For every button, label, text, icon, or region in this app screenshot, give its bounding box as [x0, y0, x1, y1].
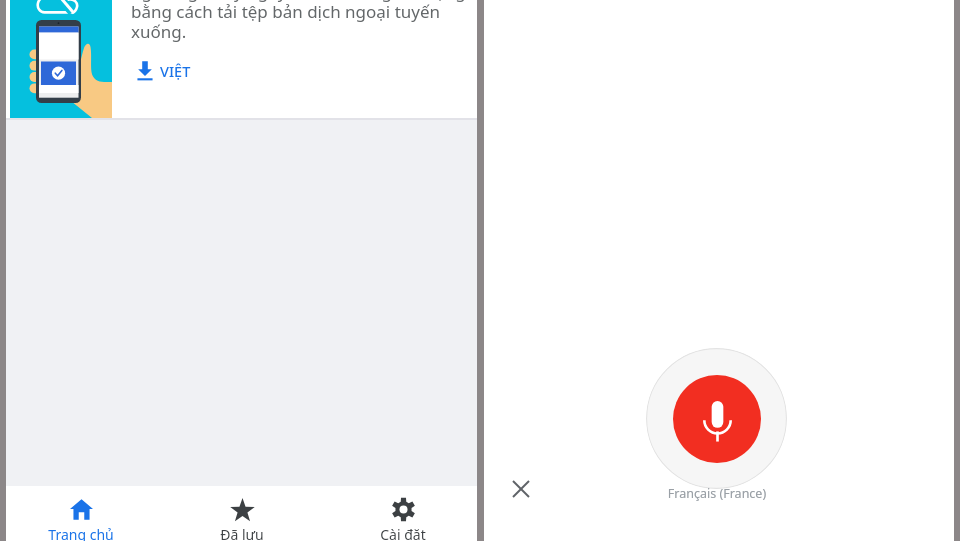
button[interactable]: Start voice input: [646, 348, 787, 489]
button[interactable]: Close: [509, 477, 533, 501]
staticText: Đã lưu: [220, 525, 264, 541]
button[interactable]: ngôn ngữ này ngay cả khi không có mạng b…: [6, 0, 477, 118]
button[interactable]: VIỆT: [136, 57, 191, 84]
staticText: Cài đặt: [380, 525, 426, 541]
staticText: ngôn ngữ này ngay cả khi không có mạng b…: [131, 0, 466, 42]
staticText: Français (France): [617, 485, 817, 502]
staticText: VIỆT: [160, 61, 191, 81]
button[interactable]: Cài đặt: [343, 486, 463, 541]
button[interactable]: Đã lưu: [182, 486, 302, 541]
button[interactable]: Trang chủ: [21, 486, 141, 541]
staticText: Trang chủ: [48, 525, 114, 541]
